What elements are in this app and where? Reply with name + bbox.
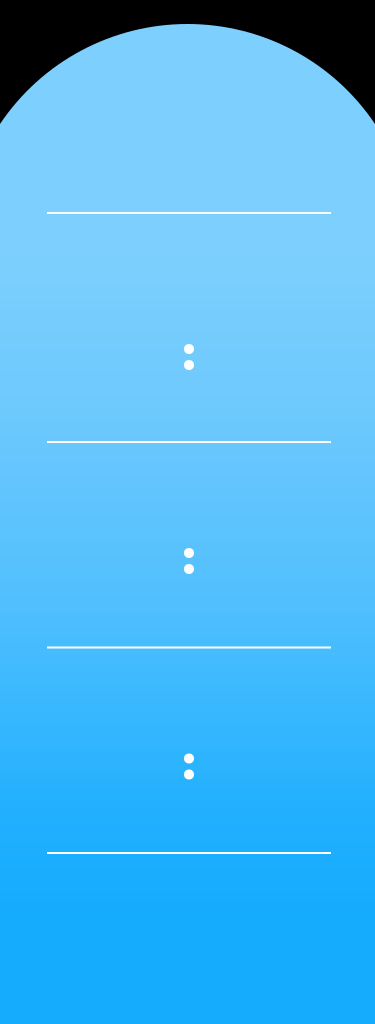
button[interactable]: More [167, 335, 211, 379]
button[interactable]: More [167, 539, 211, 583]
button[interactable]: More [167, 744, 211, 788]
